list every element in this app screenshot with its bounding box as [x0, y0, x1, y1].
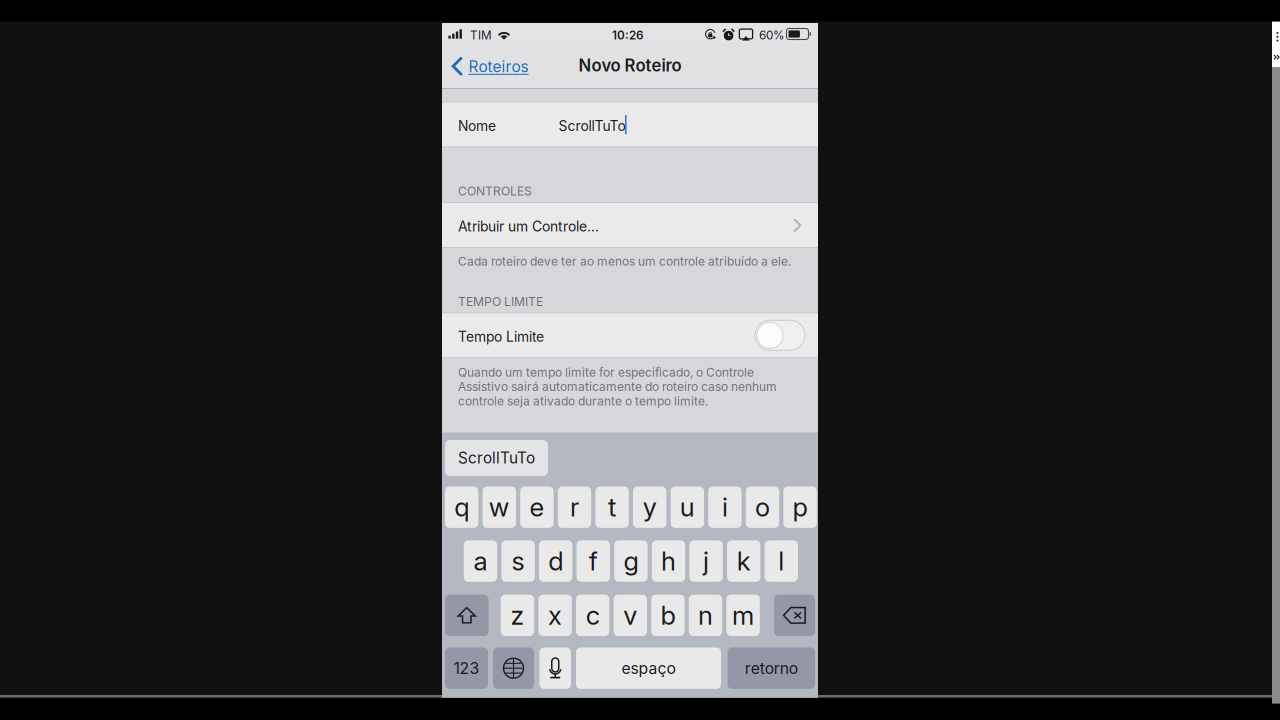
button[interactable]: h [652, 540, 685, 582]
staticText: i [722, 492, 728, 523]
staticText: a [473, 545, 487, 577]
button[interactable]: q [445, 486, 478, 528]
staticText: r [570, 492, 579, 523]
button[interactable]: a [464, 540, 497, 582]
button[interactable]: d [539, 540, 572, 582]
staticText: z [510, 600, 524, 631]
staticText: Novo Roteiro [578, 55, 681, 76]
staticText: q [454, 492, 469, 523]
staticText: k [737, 545, 751, 577]
button[interactable]: u [671, 486, 704, 528]
staticText: e [529, 492, 544, 523]
button[interactable]: i [708, 486, 742, 528]
staticText: x [548, 600, 562, 631]
button[interactable]: ScrollTuTo [445, 440, 548, 476]
staticText: Atribuir um Controle... [458, 218, 599, 235]
staticText: c [586, 600, 600, 631]
staticText: v [623, 600, 637, 631]
staticText: TIM [470, 28, 492, 42]
staticText: p [793, 492, 808, 523]
button[interactable]: w [483, 486, 516, 528]
staticText: 60% [759, 28, 785, 42]
staticText: n [698, 600, 713, 631]
staticText: h [661, 545, 676, 577]
staticText: 123 [453, 659, 479, 678]
staticText: d [548, 545, 563, 577]
button[interactable]: f [577, 540, 610, 582]
button[interactable]: espaço [576, 647, 721, 689]
button[interactable]: t [595, 486, 629, 528]
staticText: controle seja ativado durante o tempo li… [458, 394, 708, 408]
button[interactable]: p [783, 486, 817, 528]
button[interactable]: r [558, 486, 591, 528]
staticText: Assistivo sairá automaticamente do rotei… [458, 379, 777, 394]
button[interactable]: 123 [445, 647, 488, 689]
button[interactable]: o [746, 486, 779, 528]
staticText: b [660, 600, 675, 631]
button[interactable]: j [689, 540, 723, 582]
staticText: f [589, 545, 598, 577]
staticText: TEMPO LIMITE [458, 294, 543, 309]
button[interactable]: x [538, 595, 572, 636]
staticText: w [489, 492, 510, 523]
button[interactable]: y [633, 486, 666, 528]
staticText: l [778, 545, 784, 577]
staticText: t [608, 492, 616, 523]
staticText: CONTROLES [458, 184, 532, 198]
staticText: ScrollTuTo [458, 449, 535, 467]
staticText: u [680, 492, 695, 523]
button[interactable]: z [501, 595, 534, 636]
staticText: ScrollTuTo [558, 118, 625, 134]
button[interactable]: Ditado [539, 647, 571, 689]
staticText: g [623, 545, 638, 577]
button[interactable]: m [726, 595, 760, 636]
button[interactable]: c [576, 595, 609, 636]
staticText: m [732, 600, 754, 631]
button[interactable]: b [651, 595, 685, 636]
staticText: 10:26 [612, 28, 644, 42]
button[interactable]: s [501, 540, 535, 582]
button[interactable]: Atribuir um Controle... [442, 203, 818, 247]
button[interactable]: n [689, 595, 722, 636]
button[interactable]: Tempo Limite [755, 320, 805, 350]
button[interactable]: Apagar [774, 595, 815, 636]
button[interactable]: retorno [727, 647, 815, 689]
staticText: y [643, 492, 657, 523]
staticText: Nome [458, 118, 496, 134]
staticText: j [703, 545, 709, 577]
button[interactable]: Roteiros [442, 43, 538, 88]
button[interactable]: g [614, 540, 648, 582]
staticText: s [512, 545, 525, 577]
staticText: o [755, 492, 770, 523]
button[interactable]: e [520, 486, 554, 528]
button[interactable]: l [765, 540, 798, 582]
staticText: espaço [621, 659, 675, 678]
staticText: Cada roteiro deve ter ao menos um contro… [458, 254, 791, 268]
staticText: Roteiros [468, 57, 528, 76]
staticText: retorno [745, 659, 798, 678]
button[interactable]: v [614, 595, 647, 636]
button[interactable]: Shift [445, 595, 488, 636]
button[interactable]: k [727, 540, 760, 582]
staticText: Tempo Limite [458, 328, 544, 345]
staticText: Quando um tempo limite for especificado,… [458, 365, 754, 379]
button[interactable]: Mudar de teclado [493, 647, 534, 689]
